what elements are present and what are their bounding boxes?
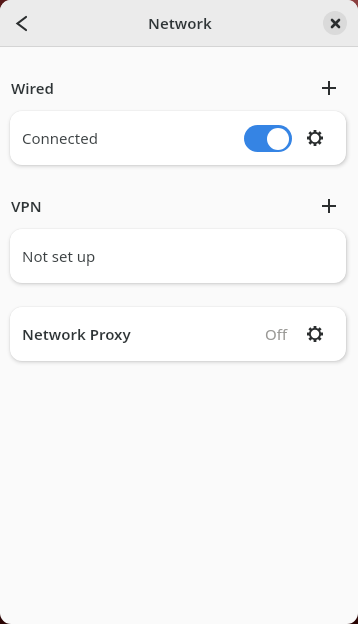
staticText: Not set up [22, 246, 96, 266]
staticText: Network [148, 13, 212, 33]
button[interactable]: Settings [302, 125, 328, 151]
button[interactable]: Connected [10, 111, 346, 165]
button[interactable]: Add VPN connection [318, 195, 340, 217]
button[interactable]: Add Wired connection [318, 77, 340, 99]
staticText: Connected [22, 128, 98, 148]
staticText: Network Proxy [22, 324, 131, 344]
button[interactable]: Network Proxy [10, 307, 346, 361]
button[interactable]: Close [323, 11, 347, 35]
button[interactable]: Not set up [10, 229, 346, 283]
staticText: VPN [11, 196, 42, 216]
button[interactable]: Wired connection on [244, 125, 292, 152]
staticText: Wired [11, 78, 54, 98]
button[interactable]: Back [4, 6, 38, 40]
button[interactable]: Settings [302, 321, 328, 347]
staticText: Off [265, 324, 288, 344]
